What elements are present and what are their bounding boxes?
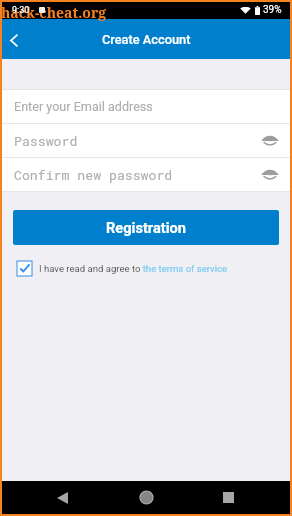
staticText: 9:30 xyxy=(12,5,30,16)
button[interactable]: Registration xyxy=(13,210,279,245)
button[interactable]: Password xyxy=(2,124,290,157)
staticText: Enter your Email address xyxy=(14,99,153,114)
button[interactable]: Show password xyxy=(258,163,282,187)
button[interactable]: I accept the terms of service xyxy=(17,261,32,276)
staticText: Password xyxy=(14,132,78,149)
button[interactable]: I have read and agree to the terms of se… xyxy=(39,263,228,274)
button[interactable]: Enter your Email address xyxy=(2,90,290,123)
staticText: Confirm new password xyxy=(14,166,173,183)
staticText: hack-cheat.org xyxy=(1,3,107,22)
staticText: Create Account xyxy=(102,32,191,47)
button[interactable]: Confirm new password xyxy=(2,158,290,191)
staticText: 39% xyxy=(263,4,282,16)
button[interactable]: Back xyxy=(1,27,27,53)
button[interactable]: Recent apps xyxy=(214,483,243,512)
button[interactable]: Show password xyxy=(258,129,282,153)
button[interactable]: Home xyxy=(132,483,161,512)
button[interactable]: Back xyxy=(48,483,77,512)
staticText: Registration xyxy=(106,219,187,236)
